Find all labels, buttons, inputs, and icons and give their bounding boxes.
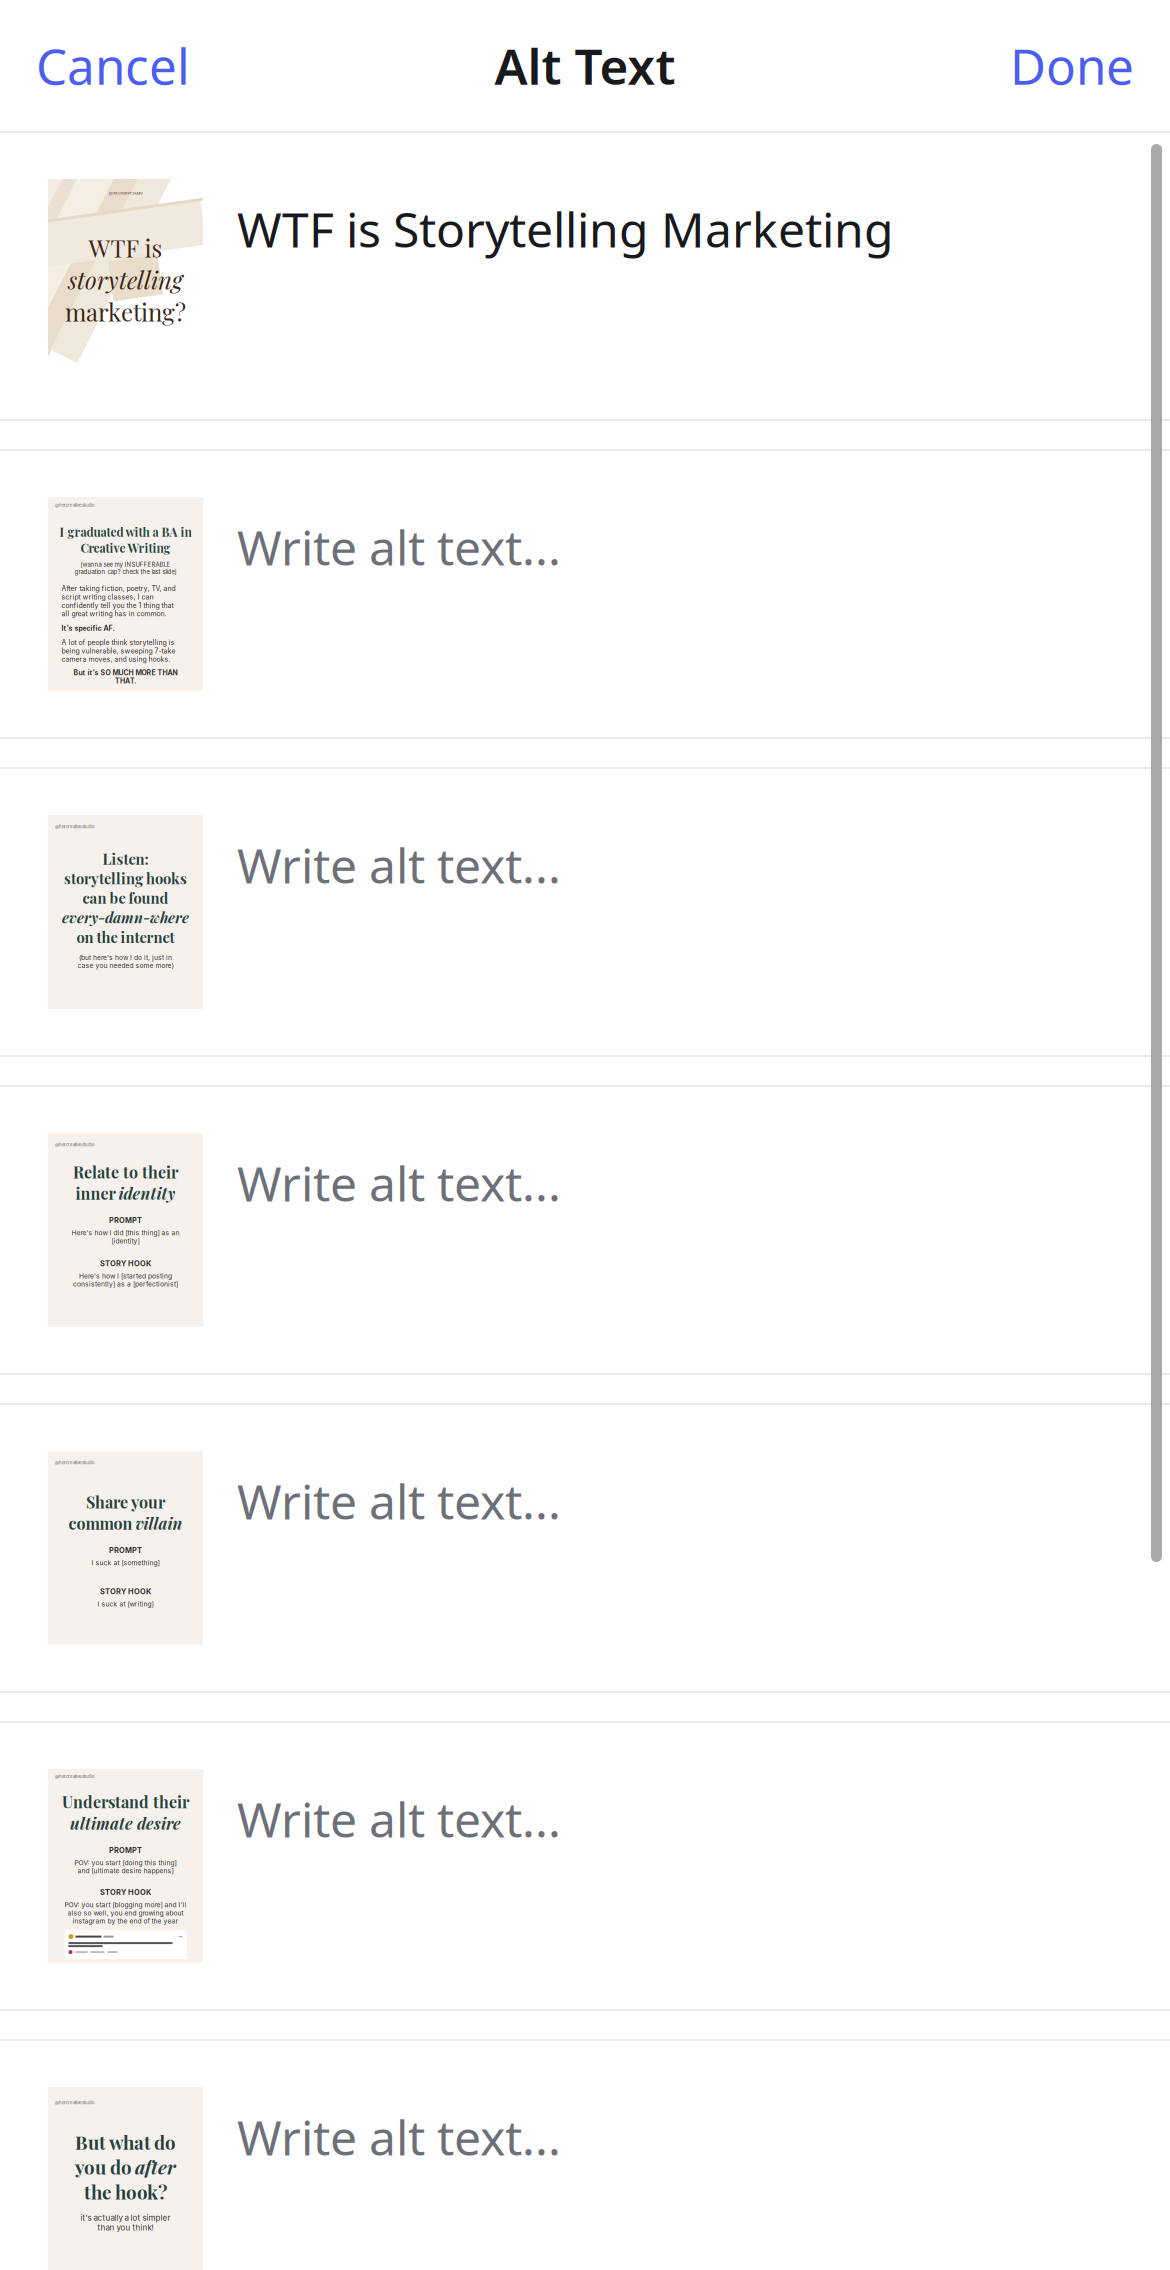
staticText: PROMPT [109,1216,142,1225]
staticText: marketing? [65,295,186,327]
button[interactable]: @her.creative.studio [0,1405,1170,1691]
staticText: storytelling [68,263,183,295]
staticText: Understand their [62,1791,189,1812]
staticText: Listen: [102,849,148,868]
staticText: A lot of people think storytelling is [61,638,174,647]
staticText: @her.creative.studio [55,1142,95,1147]
staticText: Write alt text... [237,1151,561,1215]
staticText: THAT. [115,677,136,685]
staticText: @her.creative.studio [55,824,95,829]
staticText: STORY HOOK [100,1259,151,1268]
staticText: [identity] [111,1237,139,1245]
staticText: PROMPT [109,1546,142,1555]
staticText: it's actually a lot simpler [80,2213,170,2223]
staticText: But it's SO MUCH MORE THAN [73,668,177,677]
staticText: every-damn-where [62,907,189,927]
staticText: Relate to their [73,1161,178,1182]
staticText: [wanna see my INSUFFERABLE [80,561,170,568]
staticText: consistently] as a [perfectionist] [73,1280,178,1288]
staticText: after [135,2154,176,2179]
staticText: graduation cap? check the last slide] [74,568,176,575]
staticText: and [ultimate desire happens] [77,1867,173,1875]
button[interactable]: @her.creative.studio [0,1087,1170,1373]
button[interactable]: @her.creative.studio [0,451,1170,737]
staticText: @her.creative.studio [55,1460,95,1465]
staticText: It's specific AF. [61,624,114,632]
staticText: STORY HOOK [100,1888,151,1897]
staticText: After taking fiction, poetry, TV, and [61,584,175,593]
staticText: POV: you start [doing this thing] [74,1859,176,1867]
button[interactable]: Cancel [0,13,226,118]
staticText: @her.creative.studio [55,1774,95,1779]
staticText: inner [75,1182,115,1204]
staticText: Done [1010,33,1134,98]
staticText: Write alt text... [237,833,561,897]
staticText: POV: you start [blogging more] and I'll [64,1901,186,1909]
button[interactable]: @her.creative.studio [0,769,1170,1055]
staticText: @her.creative.studio [108,191,142,195]
staticText: I suck at [something] [91,1559,159,1567]
staticText: can be found [82,888,168,907]
staticText: camera moves, and using hooks. [61,655,170,663]
staticText: Here's how I did [this thing] as an [71,1229,179,1237]
staticText: Alt Text [494,33,675,98]
staticText: Creative Writing [80,540,170,556]
staticText: Share your [86,1491,165,1512]
staticText: WTF is Storytelling Marketing [237,197,894,261]
staticText: Write alt text... [237,1469,561,1533]
staticText: Write alt text... [237,515,561,579]
staticText: @her.creative.studio [55,503,95,508]
staticText: instagram by the end of the year [72,1917,178,1925]
staticText: than you think! [97,2223,153,2232]
staticText: villain [135,1512,182,1534]
staticText: on the internet [76,927,174,947]
staticText: case you needed some more) [77,962,173,970]
staticText: I suck at [writing] [97,1600,153,1608]
staticText: PROMPT [109,1846,142,1855]
button[interactable]: @her.creative.studio [0,2041,1170,2270]
staticText: STORY HOOK [100,1587,151,1596]
staticText: identity [118,1182,175,1204]
staticText: ultimate desire [70,1812,181,1834]
staticText: I graduated with a BA in [59,524,191,540]
staticText: (but here's how I do it, just in [79,954,172,962]
staticText: all great writing has in common. [61,610,166,618]
staticText: Here's how I [started posting [79,1272,172,1280]
button[interactable]: @her.creative.studio [0,1723,1170,2009]
staticText: Write alt text... [237,1787,561,1851]
staticText: Cancel [36,33,190,98]
staticText: script writing classes, I can [61,593,153,601]
staticText: But what do [75,2129,176,2154]
staticText: WTF is [88,231,162,263]
button[interactable]: @her.creative.studio [0,133,1170,419]
staticText: the hook? [84,2179,167,2204]
staticText: Write alt text... [237,2105,561,2169]
staticText: also so well, you end growing about [67,1909,183,1917]
button[interactable]: Done [974,13,1170,118]
staticText: storytelling hooks [64,868,187,888]
staticText: being vulnerable, sweeping 7-take [61,647,175,655]
staticText: confidently tell you the 1 thing that [61,601,173,610]
staticText: you do [75,2154,132,2179]
staticText: @her.creative.studio [55,2100,95,2105]
staticText: common [68,1512,132,1534]
